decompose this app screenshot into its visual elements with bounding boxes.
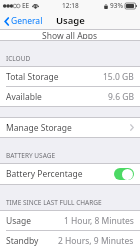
staticText: General (11, 15, 43, 27)
staticText: ICLOUD (6, 54, 31, 63)
staticText: Usage (56, 14, 85, 27)
button[interactable]: Show all Apps (0, 30, 140, 40)
staticText: EE (22, 1, 30, 10)
staticText: Usage (6, 215, 32, 227)
button[interactable]: Battery Percentage (0, 164, 140, 184)
button[interactable]: Usage (0, 211, 140, 230)
staticText: 15.0 GB (103, 71, 134, 83)
staticText: TIME SINCE LAST FULL CHARGE (6, 198, 102, 207)
staticText: Standby (6, 235, 39, 247)
button[interactable]: Standby (0, 231, 140, 250)
staticText: 1 Hour, 8 Minutes (64, 215, 134, 227)
staticText: Battery Percentage (6, 168, 83, 180)
staticText: 12:18 (62, 1, 79, 10)
other: Battery Percentage toggle, on (114, 168, 134, 180)
staticText: 93% (110, 1, 123, 10)
staticText: Manage Storage (6, 122, 72, 134)
staticText: Show all Apps (42, 30, 98, 39)
staticText: Available (6, 91, 42, 103)
staticText: BATTERY USAGE (6, 151, 55, 160)
button[interactable]: Manage Storage (0, 118, 140, 137)
staticText: Total Storage (6, 71, 59, 83)
button[interactable]: Total Storage (0, 67, 140, 86)
button[interactable]: Available (0, 87, 140, 106)
staticText: 2 Hours, 9 Minutes (58, 235, 134, 247)
button[interactable]: General (3, 13, 44, 29)
staticText: 9.6 GB (108, 91, 134, 103)
